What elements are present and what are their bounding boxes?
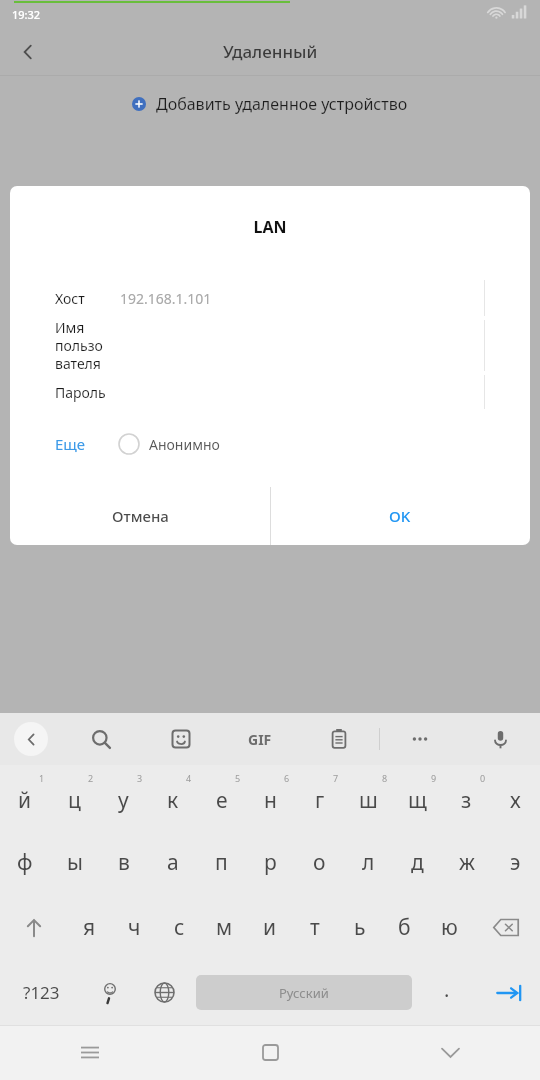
- staticText: к: [167, 786, 179, 815]
- staticText: з: [461, 786, 472, 815]
- staticText: б: [398, 913, 411, 942]
- button[interactable]: л: [344, 830, 393, 895]
- button[interactable]: у: [99, 765, 148, 830]
- button[interactable]: с: [157, 895, 202, 960]
- staticText: р: [264, 848, 277, 877]
- staticText: л: [362, 848, 375, 877]
- button[interactable]: Emoji and comma: [82, 960, 137, 1025]
- button[interactable]: й: [0, 765, 50, 830]
- staticText: ю: [441, 913, 458, 942]
- staticText: в: [118, 848, 130, 877]
- staticText: 7: [333, 772, 339, 784]
- button[interactable]: р: [246, 830, 295, 895]
- button[interactable]: Next field: [478, 960, 540, 1025]
- button[interactable]: GIF: [220, 713, 299, 765]
- staticText: OK: [389, 506, 411, 526]
- button[interactable]: и: [247, 895, 292, 960]
- staticText: 1: [39, 772, 45, 784]
- button[interactable]: м: [202, 895, 247, 960]
- button[interactable]: э: [491, 830, 540, 895]
- button[interactable]: я: [67, 895, 112, 960]
- button[interactable]: ы: [50, 830, 99, 895]
- button[interactable]: Анонимно: [118, 433, 220, 455]
- button[interactable]: в: [99, 830, 148, 895]
- staticText: Удаленный: [223, 40, 318, 63]
- button[interactable]: Отмена: [10, 487, 270, 545]
- button[interactable]: More: [380, 713, 460, 765]
- staticText: Анонимно: [149, 435, 220, 454]
- staticText: 5: [235, 772, 241, 784]
- staticText: Отмена: [112, 506, 169, 526]
- button[interactable]: ю: [427, 895, 472, 960]
- button[interactable]: з: [442, 765, 491, 830]
- staticText: ч: [128, 913, 141, 942]
- button[interactable]: Recent apps: [0, 1025, 180, 1080]
- staticText: GIF: [248, 730, 272, 749]
- staticText: я: [83, 913, 96, 942]
- staticText: Имя пользо вателя: [55, 318, 120, 373]
- button[interactable]: Добавить удаленное устройство: [0, 76, 540, 132]
- staticText: у: [118, 786, 129, 815]
- staticText: ы: [67, 848, 83, 877]
- staticText: 6: [284, 772, 290, 784]
- button[interactable]: .: [416, 960, 478, 1025]
- button[interactable]: н: [246, 765, 295, 830]
- staticText: 4: [186, 772, 192, 784]
- button[interactable]: ь: [337, 895, 382, 960]
- staticText: ж: [459, 848, 475, 877]
- staticText: 192.168.1.101: [120, 289, 212, 308]
- button[interactable]: Back: [8, 32, 48, 72]
- button[interactable]: 192.168.1.101: [120, 278, 484, 318]
- button[interactable]: ч: [112, 895, 157, 960]
- staticText: о: [313, 848, 326, 877]
- button[interactable]: Change language: [137, 960, 192, 1025]
- button[interactable]: ф: [0, 830, 50, 895]
- staticText: э: [510, 848, 521, 877]
- staticText: ф: [17, 848, 33, 877]
- staticText: г: [315, 786, 325, 815]
- staticText: п: [215, 848, 228, 877]
- button[interactable]: ш: [344, 765, 393, 830]
- button[interactable]: д: [393, 830, 442, 895]
- staticText: 0: [480, 772, 486, 784]
- button[interactable]: Search: [62, 713, 141, 765]
- staticText: LAN: [10, 216, 530, 238]
- button[interactable]: т: [292, 895, 337, 960]
- button[interactable]: г: [295, 765, 344, 830]
- button[interactable]: к: [148, 765, 197, 830]
- staticText: Добавить удаленное устройство: [156, 93, 408, 115]
- staticText: 8: [382, 772, 388, 784]
- button[interactable]: Русский: [196, 975, 412, 1010]
- button[interactable]: Back: [0, 713, 62, 765]
- button[interactable]: х: [491, 765, 540, 830]
- button[interactable]: Shift: [0, 895, 67, 960]
- button[interactable]: Hide keyboard: [360, 1025, 540, 1080]
- staticText: й: [18, 786, 32, 815]
- staticText: Еще: [55, 434, 86, 454]
- staticText: х: [510, 786, 521, 815]
- staticText: ш: [359, 786, 378, 815]
- button[interactable]: о: [295, 830, 344, 895]
- staticText: м: [216, 913, 233, 942]
- button[interactable]: ж: [442, 830, 491, 895]
- button[interactable]: ц: [50, 765, 99, 830]
- staticText: Пароль: [55, 383, 106, 402]
- button[interactable]: OK: [270, 487, 530, 545]
- button[interactable]: а: [148, 830, 197, 895]
- staticText: .: [444, 976, 450, 1003]
- button[interactable]: б: [382, 895, 427, 960]
- button[interactable]: Home: [180, 1025, 360, 1080]
- staticText: Русский: [279, 984, 329, 1002]
- button[interactable]: Voice input: [460, 713, 540, 765]
- button[interactable]: щ: [393, 765, 442, 830]
- button[interactable]: п: [197, 830, 246, 895]
- staticText: 3: [137, 772, 143, 784]
- button[interactable]: Stickers: [141, 713, 220, 765]
- button[interactable]: Clipboard: [299, 713, 379, 765]
- button[interactable]: е: [197, 765, 246, 830]
- button[interactable]: Backspace: [472, 895, 540, 960]
- button[interactable]: ?123: [0, 960, 82, 1025]
- button[interactable]: Еще: [55, 427, 118, 461]
